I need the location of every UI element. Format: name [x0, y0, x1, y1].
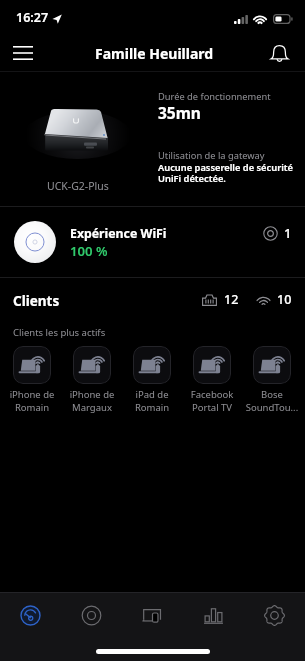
staticText: Durée de fonctionnement	[158, 90, 271, 103]
button[interactable]: Notifications	[259, 29, 305, 71]
button[interactable]: Expérience WiFi	[0, 207, 305, 277]
button[interactable]: Menu	[0, 29, 46, 71]
button[interactable]: Appareils	[61, 593, 122, 638]
staticText: Bose SoundTou...	[242, 388, 302, 414]
button[interactable]	[13, 346, 51, 384]
button[interactable]: Clients	[122, 593, 183, 638]
staticText: Famille Heuillard	[95, 44, 214, 63]
staticText: Utilisation de la gateway	[158, 149, 265, 162]
staticText: Expérience WiFi	[70, 225, 167, 242]
staticText: Facebook Portal TV	[182, 388, 242, 414]
button[interactable]	[253, 346, 291, 384]
button[interactable]	[133, 346, 171, 384]
staticText: 10	[277, 291, 292, 308]
staticText: Aucune passerelle de sécurité UniFi déte…	[158, 161, 294, 185]
button[interactable]: Réglages	[244, 593, 305, 638]
button[interactable]: Statistiques	[183, 593, 244, 638]
staticText: 12	[224, 291, 239, 308]
staticText: UCK-G2-Plus	[47, 179, 109, 193]
button[interactable]	[73, 346, 111, 384]
staticText: iPad de Romain	[122, 388, 182, 414]
button[interactable]: Tableau de bord	[0, 593, 61, 638]
staticText: 100 %	[70, 242, 108, 260]
staticText: iPhone de Margaux	[62, 388, 122, 414]
staticText: 1	[284, 224, 292, 242]
staticText: 35mn	[158, 102, 201, 123]
button[interactable]	[193, 346, 231, 384]
staticText: iPhone de Romain	[2, 388, 62, 414]
staticText: Clients les plus actifs	[13, 326, 106, 339]
staticText: 16:27	[16, 9, 49, 26]
staticText: Clients	[13, 292, 60, 310]
